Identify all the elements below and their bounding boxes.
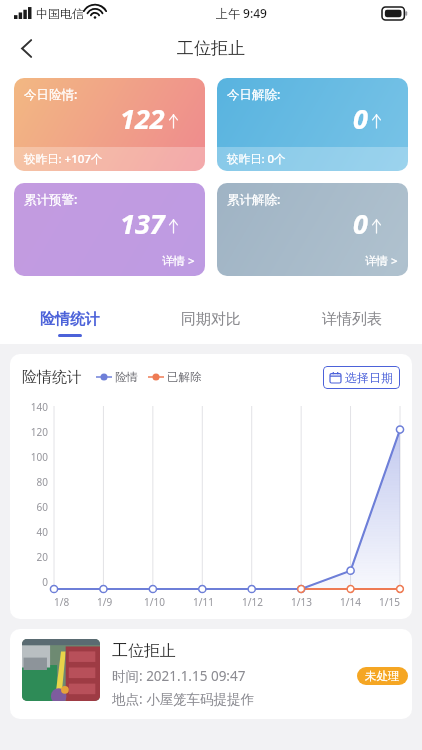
- staticText: 1/9: [97, 595, 113, 609]
- button[interactable]: 累计预警:: [14, 183, 205, 276]
- button[interactable]: 险情统计: [0, 302, 140, 344]
- staticText: 122: [120, 100, 165, 137]
- button[interactable]: 选择日期: [323, 366, 400, 389]
- button[interactable]: Back: [6, 28, 46, 68]
- staticText: 0: [353, 205, 368, 242]
- staticText: 累计预警:: [24, 191, 78, 208]
- button[interactable]: 今日险情:: [14, 78, 205, 171]
- staticText: 较昨日: 0个: [227, 151, 286, 167]
- staticText: 0: [42, 575, 48, 589]
- button[interactable]: 累计解除:: [217, 183, 408, 276]
- staticText: 今日险情:: [24, 86, 78, 103]
- staticText: 137: [120, 205, 165, 242]
- staticText: 险情: [115, 370, 138, 384]
- staticText: 已解除: [167, 370, 202, 384]
- button[interactable]: 详情 >: [365, 253, 398, 269]
- button[interactable]: 同期对比: [140, 302, 281, 344]
- button[interactable]: 今日解除:: [217, 78, 408, 171]
- staticText: 累计解除:: [227, 191, 281, 208]
- staticText: 工位拒止: [177, 38, 245, 59]
- staticText: 120: [30, 425, 48, 439]
- staticText: 60: [36, 500, 48, 514]
- staticText: 80: [36, 475, 48, 489]
- staticText: 1/13: [291, 595, 312, 609]
- staticText: 今日解除:: [227, 86, 281, 103]
- staticText: 0: [353, 100, 368, 137]
- staticText: 选择日期: [345, 370, 393, 385]
- staticText: 同期对比: [181, 310, 241, 329]
- staticText: 1/15: [379, 595, 400, 609]
- staticText: 40: [36, 525, 48, 539]
- staticText: 中国电信: [36, 6, 84, 21]
- staticText: 较昨日: +107个: [24, 151, 103, 167]
- staticText: 险情统计: [40, 310, 100, 329]
- staticText: 时间: 2021.1.15 09:47: [112, 667, 246, 685]
- staticText: 1/12: [242, 595, 263, 609]
- button[interactable]: 详情列表: [281, 302, 422, 344]
- button[interactable]: 未处理: [357, 667, 408, 685]
- staticText: 上午 9:49: [216, 5, 267, 21]
- staticText: 1/10: [144, 595, 165, 609]
- staticText: 工位拒止: [112, 641, 176, 661]
- staticText: 地点: 小屋笼车码提提作: [112, 690, 255, 708]
- staticText: 未处理: [365, 669, 400, 683]
- staticText: 20: [36, 550, 48, 564]
- staticText: 1/14: [340, 595, 361, 609]
- button[interactable]: 工位拒止: [10, 629, 412, 719]
- staticText: 100: [30, 450, 48, 464]
- staticText: 140: [30, 400, 48, 414]
- button[interactable]: 详情 >: [162, 253, 195, 269]
- staticText: 详情列表: [322, 310, 382, 329]
- staticText: 1/8: [54, 595, 70, 609]
- staticText: 1/11: [193, 595, 214, 609]
- staticText: 险情统计: [22, 368, 82, 387]
